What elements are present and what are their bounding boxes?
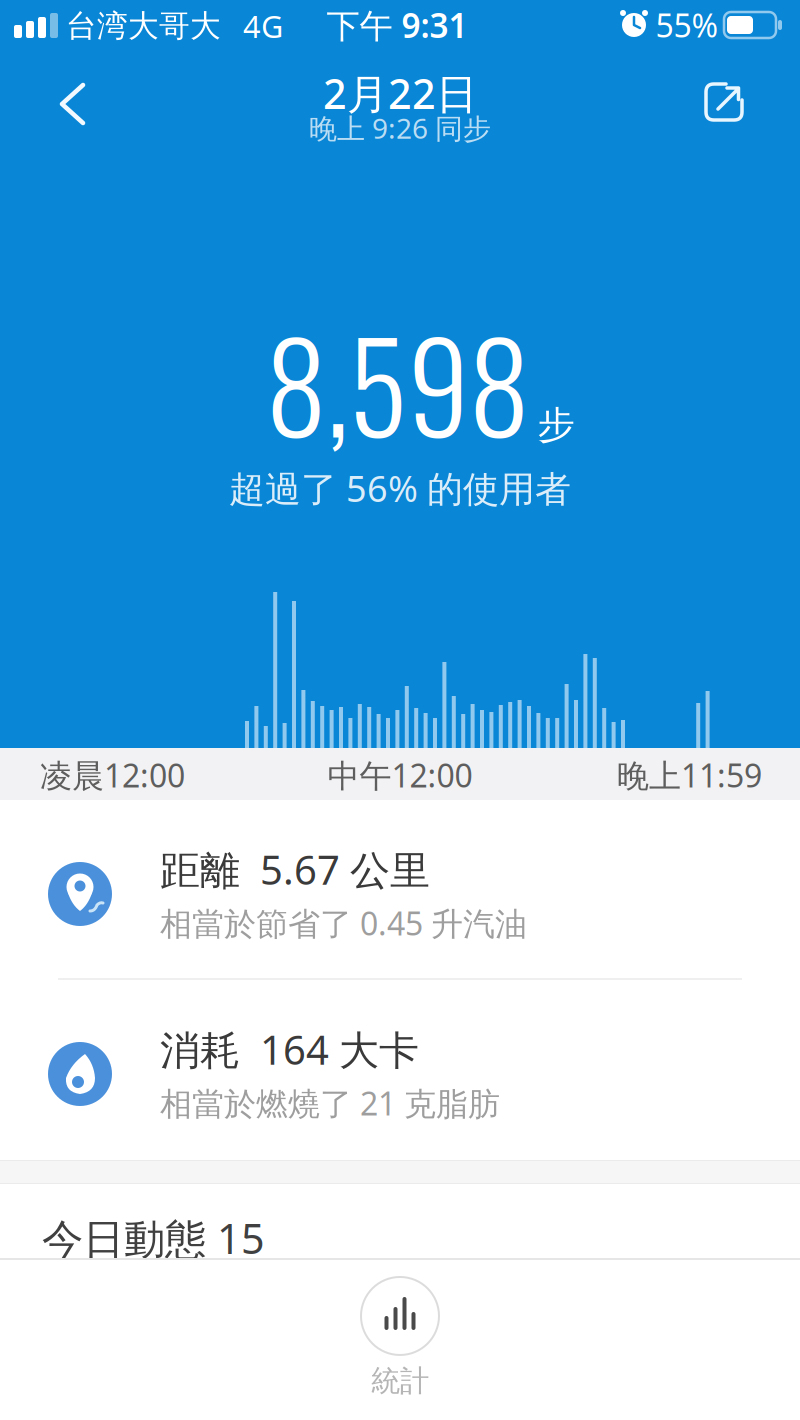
button[interactable]: 距離 5.67 公里	[0, 800, 800, 979]
button[interactable]: Back	[52, 82, 96, 126]
staticText: 4G	[243, 6, 283, 46]
staticText: 55%	[655, 4, 718, 46]
staticText: 晚上 9:26 同步	[309, 109, 491, 147]
staticText: 中午12:00	[327, 754, 472, 796]
button[interactable]: Share	[702, 80, 746, 124]
staticText: 晚上11:59	[617, 754, 762, 796]
staticText: 相當於節省了 0.45 升汽油	[160, 902, 527, 944]
staticText: 2月22日	[323, 66, 477, 120]
staticText: 8,598	[265, 291, 529, 473]
staticText: 下午 9:31	[326, 3, 467, 47]
staticText: 凌晨12:00	[40, 754, 185, 796]
staticText: 統計	[371, 1363, 429, 1399]
staticText: 消耗 164 大卡	[160, 1023, 419, 1076]
staticText: 超過了 56% 的使用者	[229, 464, 571, 512]
staticText: 步	[537, 402, 574, 448]
staticText: 相當於燃燒了 21 克脂肪	[160, 1082, 500, 1124]
staticText: 距離 5.67 公里	[160, 843, 430, 896]
button[interactable]: 消耗 164 大卡	[0, 980, 800, 1159]
staticText: 台湾大哥大	[66, 7, 221, 45]
staticText: 今日動態 15	[42, 1211, 265, 1265]
button[interactable]: 統計	[361, 1277, 439, 1399]
